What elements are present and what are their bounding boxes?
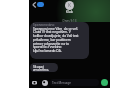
staticText: Sponzorováno bbox=[33, 23, 55, 27]
button[interactable]: Send bbox=[101, 79, 108, 86]
staticText: Covid19 test negativen. V bbox=[33, 30, 71, 34]
button[interactable]: Camera bbox=[31, 79, 38, 86]
staticText: Dnes 9:13 bbox=[29, 19, 110, 23]
staticText: Klub bbox=[66, 10, 73, 14]
staticText: kolikor dovoljujete, da Vaš test bbox=[33, 34, 79, 38]
button[interactable]: Skupaj zmoremo. NIJZ bbox=[30, 63, 58, 72]
button[interactable]: Back bbox=[30, 1, 37, 8]
button[interactable]: Profile photo bbox=[65, 1, 74, 10]
staticText: primer odgovorite na to bbox=[33, 42, 69, 46]
button[interactable]: Gallery bbox=[41, 79, 48, 86]
staticText: Skupaj zmoremo. NIJZ bbox=[33, 64, 58, 72]
staticText: Sponzorujeme Vám, da se veš bbox=[33, 27, 78, 31]
staticText: prikažemo, kar pozitivem bbox=[33, 38, 71, 42]
staticText: Text Message bbox=[52, 81, 72, 85]
staticText: K bbox=[68, 2, 72, 9]
button[interactable]: Sponzorováno bbox=[30, 22, 89, 59]
staticText: ključno besedo DA. bbox=[33, 49, 62, 53]
button[interactable]: Text Message bbox=[50, 79, 99, 86]
staticText: sporočilo z vsebino bbox=[33, 45, 62, 49]
